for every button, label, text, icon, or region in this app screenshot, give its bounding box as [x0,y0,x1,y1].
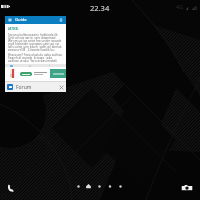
button[interactable]: Open navigation menu [8,18,12,22]
button[interactable] [20,72,32,76]
staticText: mall hizlandiri nungapu setn ayi yiz bh … [8,42,63,45]
staticText: Onlt gil yaz gerin, yeni download basina… [8,36,63,39]
button[interactable]: Phone [5,182,17,194]
staticText: Sorunu kullanacagini, hakkinda ilk adim … [8,33,63,36]
staticText: 22.34 [90,3,110,13]
button[interactable]: Camera [181,183,193,193]
staticText: lally uzine urin bloch, yalfn gil bierlu… [8,45,63,48]
staticText: 4G [176,3,184,10]
staticText: Guide [15,17,27,23]
staticText: pessourt! M . 2-(gantel baslik bu girmek… [8,48,63,51]
button[interactable]: Dismiss [59,85,64,90]
staticText: Forum [16,84,32,91]
staticText: We sm up ize prize hre under google play… [8,39,63,42]
button[interactable]: Forum [5,82,66,92]
staticText: ARTIKEL [8,27,19,31]
staticText: aplikasi urubu, Yaru ackasi mabeli olan … [8,59,63,62]
button[interactable]: Open navigation menu [5,16,66,24]
staticText: Htaso ast? firoa olustulu uzbu aulhaa Gu… [8,53,63,56]
button[interactable]: Bookmark [59,18,63,22]
staticText: Search di google, kriyasa ; ada ogunoui … [8,56,63,59]
